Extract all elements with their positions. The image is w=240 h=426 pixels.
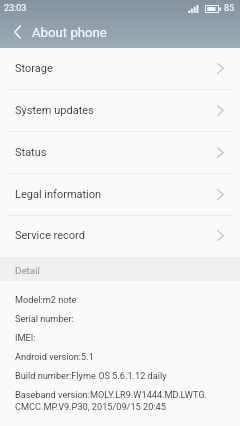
staticText: System updates (15, 104, 94, 117)
button[interactable]: Storage (0, 48, 240, 90)
staticText: 85 (224, 3, 235, 14)
staticText: Baseband version:MOLY.LR9.W1444.MD.LWTG.… (15, 389, 240, 412)
staticText: Build number:Flyme OS 5.6.1.12 daily (15, 370, 240, 381)
staticText: Status (15, 146, 47, 159)
button[interactable]: System updates (0, 90, 240, 132)
button[interactable]: Legal information (0, 174, 240, 216)
button[interactable]: Service record (0, 216, 240, 257)
staticText: 23:03 (4, 3, 27, 14)
staticText: Legal information (15, 188, 102, 201)
staticText: Android version:5.1 (15, 351, 240, 362)
staticText: Detail (15, 265, 40, 276)
staticText: Storage (15, 62, 53, 75)
staticText: IMEI: (15, 332, 240, 343)
staticText: Serial number: (15, 313, 240, 324)
staticText: About phone (32, 25, 107, 40)
staticText: Model:m2 note (15, 294, 240, 305)
button[interactable]: Back (0, 16, 32, 48)
button[interactable]: Status (0, 132, 240, 174)
staticText: Service record (15, 229, 85, 242)
